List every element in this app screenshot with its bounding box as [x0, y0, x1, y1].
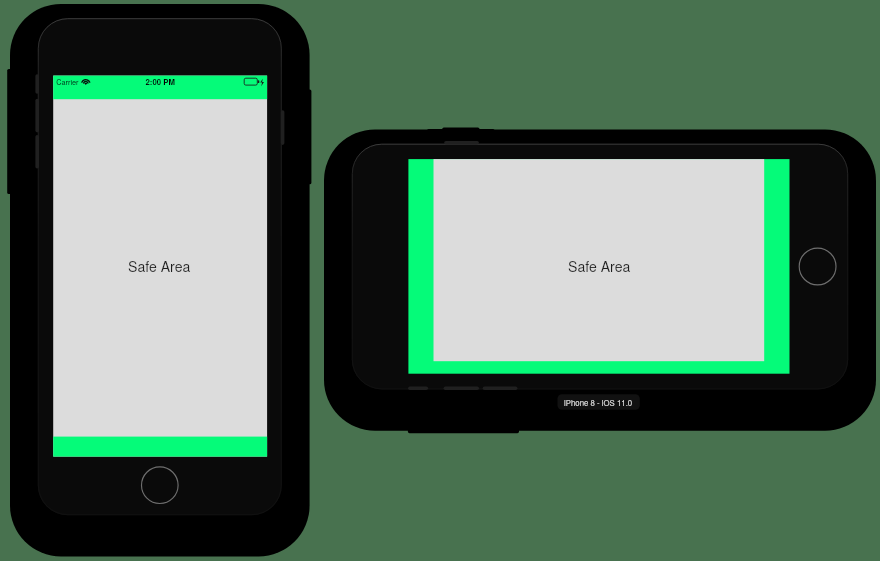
- button[interactable]: [0, 0, 880, 561]
